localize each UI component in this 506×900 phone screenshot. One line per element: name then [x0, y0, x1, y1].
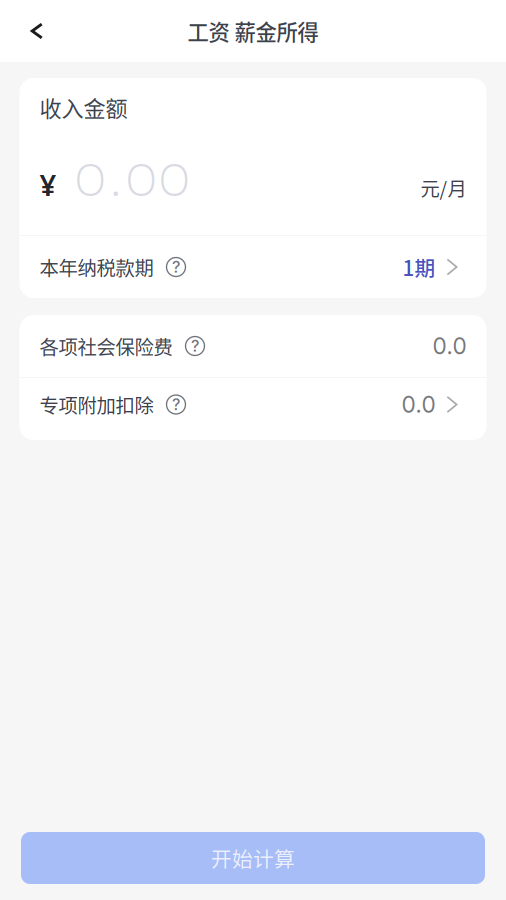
staticText: 工资 薪金所得	[187, 16, 318, 46]
button[interactable]: 本年纳税款期	[19, 236, 486, 298]
staticText: 1期	[402, 252, 435, 282]
staticText: ?	[172, 257, 180, 277]
staticText: 专项附加扣除	[39, 390, 153, 418]
staticText: 各项社会保险费	[39, 332, 172, 360]
staticText: 本年纳税款期	[39, 253, 153, 281]
staticText: 收入金额	[39, 91, 127, 123]
staticText: ?	[191, 336, 199, 356]
staticText: ?	[172, 395, 180, 414]
staticText: ¥	[39, 165, 56, 205]
button[interactable]: Back	[14, 8, 60, 54]
button[interactable]: 专项附加扣除	[19, 378, 486, 431]
staticText: 0.0	[432, 332, 466, 360]
staticText: 0.00	[73, 151, 190, 207]
staticText: 0.0	[401, 391, 435, 418]
button[interactable]: 开始计算	[21, 832, 485, 884]
staticText: 开始计算	[211, 843, 295, 873]
button[interactable]: 各项社会保险费	[19, 315, 486, 377]
staticText: 元/月	[420, 174, 466, 202]
